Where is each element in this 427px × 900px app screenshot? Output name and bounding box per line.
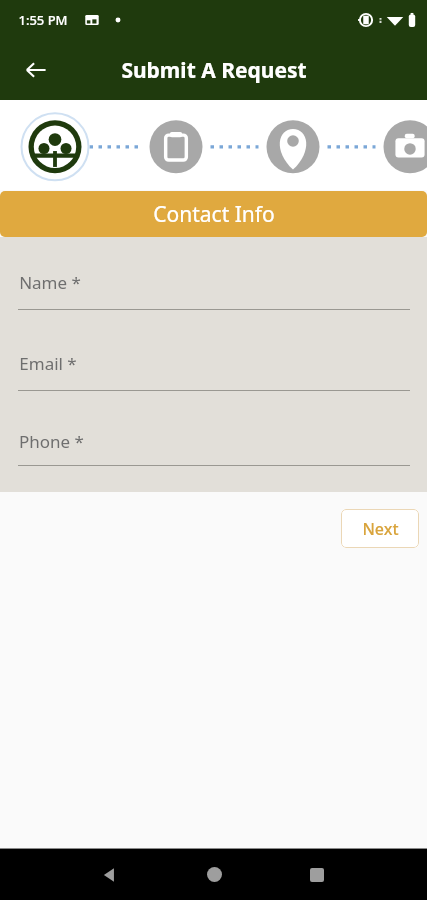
button[interactable]: Photo step — [384, 119, 427, 172]
staticText: Email * — [19, 352, 77, 375]
button[interactable]: Email * — [0, 336, 427, 417]
button[interactable]: Contact Info — [0, 191, 427, 237]
button[interactable]: Back — [84, 849, 136, 900]
button[interactable]: Details step — [150, 119, 203, 172]
staticText: Contact Info — [153, 200, 275, 229]
staticText: Phone * — [19, 430, 84, 453]
staticText: 1:55 PM — [18, 11, 68, 29]
button[interactable]: Phone * — [0, 417, 427, 492]
button[interactable]: Next — [341, 509, 419, 548]
button[interactable]: Back — [14, 48, 58, 92]
staticText: Name * — [19, 271, 81, 294]
button[interactable]: Location step — [267, 119, 320, 172]
button[interactable]: Name * — [0, 255, 427, 336]
button[interactable]: Recents — [291, 849, 343, 900]
staticText: Next — [362, 518, 399, 540]
staticText: Submit A Request — [121, 56, 307, 85]
button[interactable]: Home — [188, 849, 240, 900]
button[interactable]: Contact Info step — [29, 119, 82, 172]
